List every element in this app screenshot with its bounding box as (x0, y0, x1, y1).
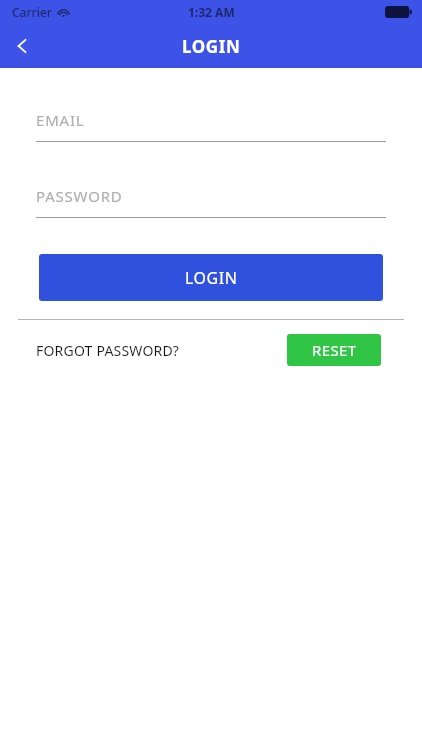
staticText: LOGIN (182, 35, 241, 58)
button[interactable]: FORGOT PASSWORD? (36, 341, 180, 360)
button[interactable]: EMAIL (36, 110, 386, 142)
staticText: FORGOT PASSWORD? (36, 341, 180, 360)
staticText: PASSWORD (36, 186, 123, 206)
staticText: 1:32 AM (188, 4, 235, 20)
staticText: EMAIL (36, 110, 85, 130)
staticText: LOGIN (185, 267, 238, 289)
staticText: RESET (312, 340, 357, 360)
button[interactable]: PASSWORD (36, 186, 386, 218)
button[interactable]: Back (0, 24, 44, 68)
staticText: Carrier (12, 4, 52, 20)
button[interactable]: RESET (287, 334, 381, 366)
button[interactable]: LOGIN (39, 254, 383, 301)
